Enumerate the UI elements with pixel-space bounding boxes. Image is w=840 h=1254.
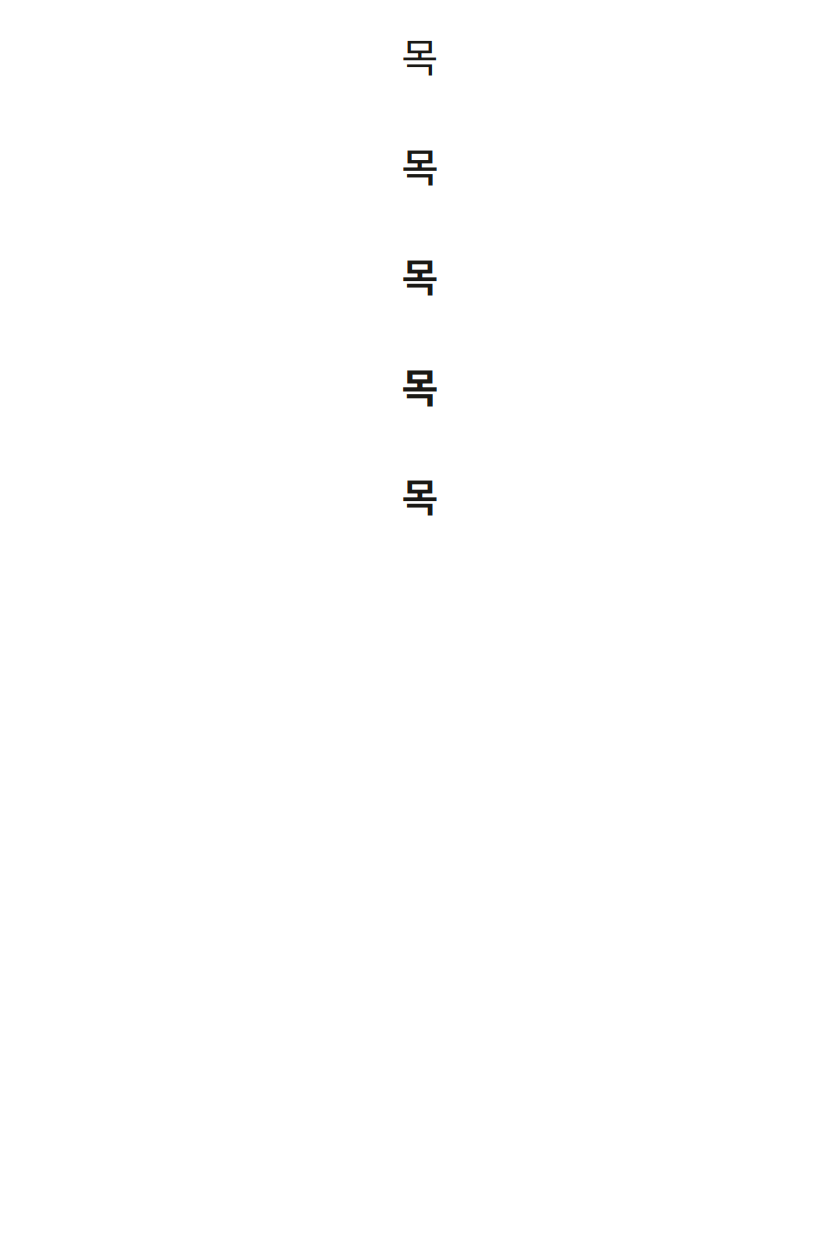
staticText: 목 bbox=[401, 466, 438, 524]
staticText: 목 bbox=[401, 246, 438, 304]
staticText: 목 bbox=[401, 136, 438, 194]
staticText: 목 bbox=[401, 26, 438, 84]
staticText: 목 bbox=[401, 356, 438, 414]
